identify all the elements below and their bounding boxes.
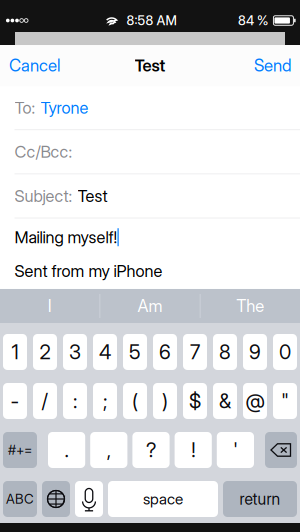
button[interactable]: #+=	[3, 432, 37, 468]
button[interactable]: 8	[213, 334, 237, 370]
button[interactable]: return	[223, 481, 297, 517]
staticText: "	[281, 389, 289, 413]
staticText: -	[10, 389, 19, 413]
button[interactable]: 6	[153, 334, 177, 370]
button[interactable]: ,	[90, 432, 127, 468]
staticText: To:	[14, 98, 35, 118]
button[interactable]: "	[273, 383, 297, 419]
staticText: 8:58 AM	[126, 13, 176, 28]
button[interactable]: ABC	[3, 481, 37, 517]
staticText: Am	[137, 296, 162, 316]
staticText: ,	[107, 438, 111, 462]
button[interactable]: Next keyboard	[42, 481, 70, 517]
button[interactable]: 7	[183, 334, 207, 370]
staticText: !	[191, 438, 195, 462]
staticText: )	[162, 389, 168, 413]
button[interactable]: 4	[93, 334, 117, 370]
button[interactable]: ;	[93, 383, 117, 419]
staticText: &	[219, 389, 231, 413]
button[interactable]: 0	[273, 334, 297, 370]
staticText: ?	[146, 438, 156, 462]
button[interactable]: Send	[245, 45, 300, 86]
staticText: Sent from my iPhone	[14, 261, 162, 281]
staticText: Mailing myself!	[14, 227, 117, 247]
button[interactable]: ?	[132, 432, 170, 468]
button[interactable]: )	[153, 383, 177, 419]
button[interactable]: /	[33, 383, 57, 419]
button[interactable]: 3	[63, 334, 87, 370]
button[interactable]: &	[213, 383, 237, 419]
button[interactable]: 1	[3, 334, 27, 370]
staticText: #+=	[8, 442, 32, 458]
button[interactable]: (	[123, 383, 147, 419]
staticText: Cancel	[9, 55, 60, 76]
button[interactable]: !	[175, 432, 212, 468]
staticText: I	[48, 296, 52, 316]
staticText: 9	[249, 340, 261, 364]
staticText: 3	[69, 340, 81, 364]
button[interactable]: 9	[243, 334, 267, 370]
staticText: Send	[254, 55, 291, 76]
button[interactable]: .	[48, 432, 85, 468]
staticText: :	[73, 389, 77, 413]
staticText: (	[132, 389, 138, 413]
button[interactable]: Dictation	[75, 481, 103, 517]
staticText: space	[143, 490, 183, 508]
staticText: ;	[103, 389, 107, 413]
staticText: Tyrone	[40, 98, 88, 118]
button[interactable]: @	[243, 383, 267, 419]
staticText: 2	[39, 340, 50, 364]
staticText: ABC	[6, 491, 34, 507]
button[interactable]: space	[108, 481, 218, 517]
button[interactable]: Delete	[265, 432, 297, 468]
staticText: 4	[99, 340, 111, 364]
staticText: 1	[11, 340, 18, 364]
staticText: @	[245, 389, 264, 413]
button[interactable]: :	[63, 383, 87, 419]
staticText: .	[65, 438, 69, 462]
button[interactable]: 2	[33, 334, 57, 370]
button[interactable]: I	[0, 289, 99, 323]
staticText: '	[233, 438, 238, 462]
staticText: 6	[159, 340, 171, 364]
staticText: The	[236, 296, 264, 316]
staticText: 0	[279, 340, 291, 364]
button[interactable]: Am	[100, 289, 200, 323]
staticText: Test	[77, 186, 107, 206]
staticText: $	[189, 389, 201, 413]
staticText: 8	[219, 340, 231, 364]
staticText: 5	[129, 340, 141, 364]
button[interactable]: '	[217, 432, 254, 468]
staticText: Cc/Bcc:	[14, 142, 72, 162]
staticText: 84 %	[238, 13, 268, 28]
button[interactable]: The	[200, 289, 300, 323]
button[interactable]: Cancel	[0, 45, 69, 86]
staticText: Test	[134, 56, 165, 75]
button[interactable]: 5	[123, 334, 147, 370]
button[interactable]: $	[183, 383, 207, 419]
button[interactable]: -	[3, 383, 27, 419]
staticText: 7	[190, 340, 200, 364]
staticText: /	[41, 389, 48, 413]
staticText: Subject:	[14, 186, 72, 206]
staticText: return	[239, 489, 280, 508]
